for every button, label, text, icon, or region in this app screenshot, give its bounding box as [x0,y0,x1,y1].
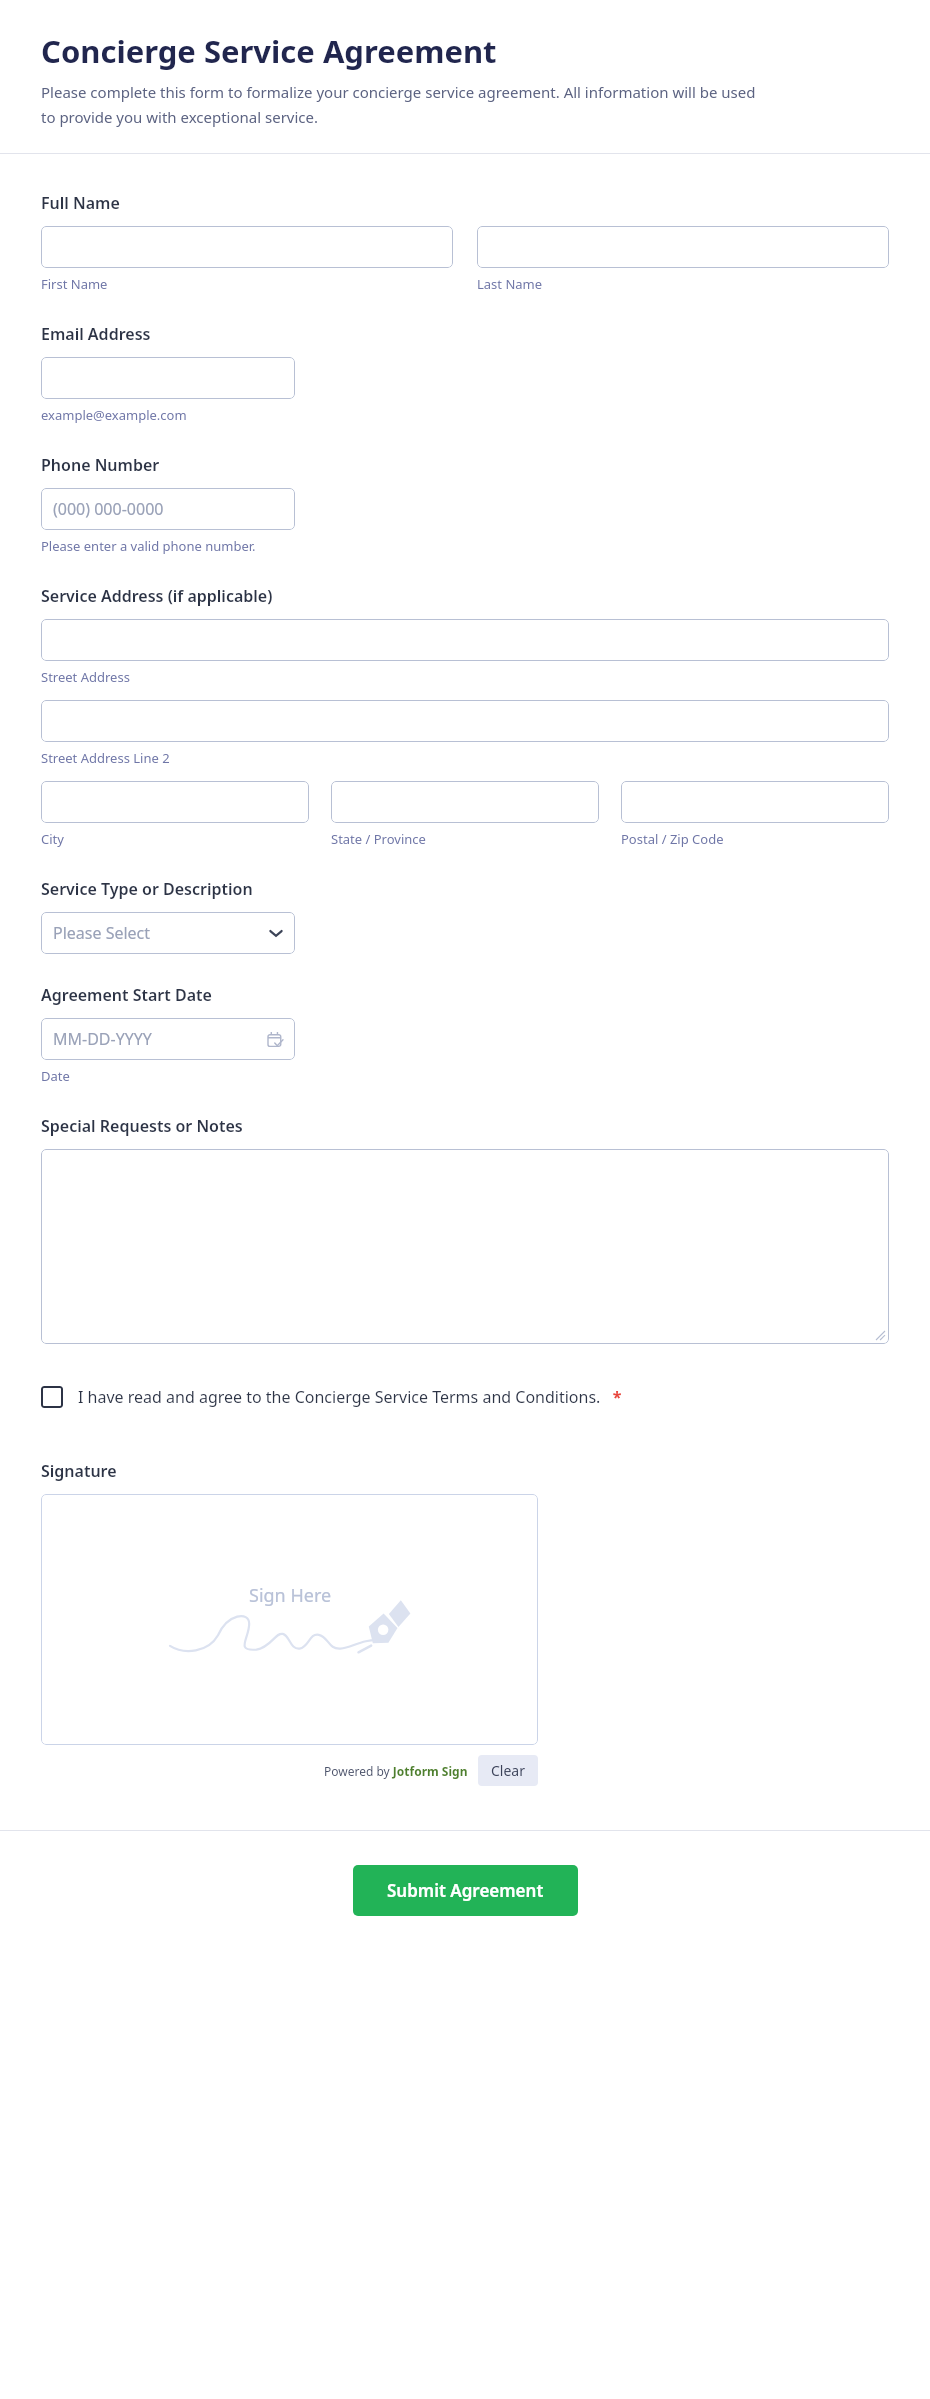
staticText: Last Name [477,275,543,293]
button[interactable]: Submit Agreement [353,1865,578,1916]
staticText: Please complete this form to formalize y… [41,82,771,127]
staticText: Date [41,1067,70,1085]
staticText: Special Requests or Notes [41,1115,243,1137]
staticText: example@example.com [41,406,187,424]
button[interactable] [477,226,889,268]
staticText: Postal / Zip Code [621,830,724,848]
staticText: State / Province [331,830,426,848]
staticText: Full Name [41,192,120,214]
staticText: Submit Agreement [387,1879,544,1902]
button[interactable]: MM-DD-YYYY [41,1018,295,1060]
button[interactable] [41,700,889,742]
staticText: Agreement Start Date [41,984,212,1006]
staticText: Signature [41,1460,117,1482]
button[interactable] [41,781,309,823]
button[interactable]: Clear [478,1755,538,1786]
button[interactable] [41,1149,889,1344]
button[interactable]: I have read and agree to the Concierge S… [41,1386,889,1408]
staticText: First Name [41,275,108,293]
staticText: Street Address [41,668,130,686]
staticText: MM-DD-YYYY [53,1028,152,1050]
staticText: Service Type or Description [41,878,253,900]
button[interactable] [331,781,599,823]
staticText: Street Address Line 2 [41,749,170,767]
button[interactable]: (000) 000-0000 [41,488,295,530]
staticText: I have read and agree to the Concierge S… [78,1386,622,1408]
staticText: Please enter a valid phone number. [41,537,256,555]
staticText: (000) 000-0000 [53,498,164,520]
button[interactable]: Please Select [41,912,295,954]
button[interactable] [621,781,889,823]
staticText: Concierge Service Agreement [41,30,497,72]
staticText: City [41,830,64,848]
staticText: Email Address [41,323,151,345]
staticText: Service Address (if applicable) [41,585,273,607]
button[interactable]: Signature pad, sign here [41,1494,538,1745]
staticText: Sign Here [249,1583,332,1608]
staticText: Powered by Jotform Sign [324,1763,468,1779]
button[interactable] [41,357,295,399]
staticText: Clear [491,1761,525,1780]
button[interactable] [41,619,889,661]
staticText: Please Select [53,922,151,944]
button[interactable] [41,226,453,268]
staticText: Phone Number [41,454,160,476]
